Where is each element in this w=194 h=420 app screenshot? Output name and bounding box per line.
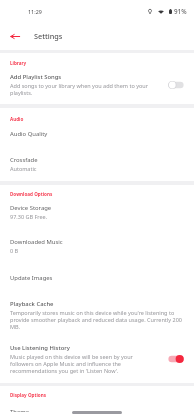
- button[interactable]: Toggle off: [168, 80, 184, 90]
- button[interactable]: Theme: [0, 398, 194, 420]
- staticText: Device Storage: [10, 204, 52, 212]
- staticText: Add Playlist Songs: [10, 73, 62, 81]
- staticText: Download Options: [10, 191, 53, 197]
- button[interactable]: Update Images: [0, 264, 194, 291]
- staticText: 91%: [174, 7, 187, 16]
- button[interactable]: Add Playlist Songs: [0, 66, 194, 104]
- staticText: Automatic: [10, 165, 37, 172]
- button[interactable]: Audio Quality: [0, 122, 194, 147]
- button[interactable]: Crossfade: [0, 147, 194, 181]
- staticText: Settings: [34, 31, 63, 41]
- staticText: Audio Quality: [10, 130, 48, 138]
- staticText: Use Listening History: [10, 344, 70, 352]
- button[interactable]: Toggle on: [168, 354, 184, 364]
- staticText: Display Options: [10, 392, 46, 398]
- button[interactable]: Device Storage: [0, 197, 194, 229]
- button[interactable]: Back: [5, 27, 25, 45]
- button[interactable]: Downloaded Music: [0, 229, 194, 264]
- staticText: Audio: [10, 116, 24, 122]
- staticText: Music played on this device will be seen…: [10, 353, 150, 374]
- staticText: Crossfade: [10, 156, 38, 164]
- staticText: 0 B: [10, 247, 19, 254]
- staticText: Update Images: [10, 274, 53, 282]
- staticText: Playback Cache: [10, 300, 54, 308]
- button[interactable]: Playback Cache: [0, 291, 194, 337]
- button[interactable]: Use Listening History: [0, 337, 194, 383]
- staticText: 11:29: [28, 8, 42, 15]
- staticText: Library: [10, 60, 27, 66]
- staticText: 97.30 GB Free.: [10, 213, 48, 220]
- staticText: Downloaded Music: [10, 238, 63, 246]
- staticText: Add songs to your library when you add t…: [10, 82, 150, 96]
- staticText: Theme: [10, 408, 30, 412]
- staticText: Temporarily stores music on this device …: [10, 309, 184, 330]
